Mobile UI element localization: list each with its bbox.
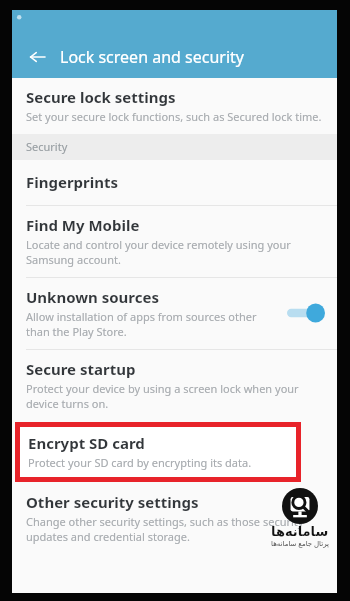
staticText: Lock screen and security xyxy=(60,46,244,68)
staticText: Protect your device by using a screen lo… xyxy=(26,381,325,411)
button[interactable]: Fingerprints xyxy=(12,160,337,205)
staticText: پرتال جامع سامانه‌ها xyxy=(271,539,329,549)
button[interactable]: Unknown sources xyxy=(12,278,337,349)
button[interactable]: Secure startup xyxy=(12,350,337,421)
staticText: Secure lock settings xyxy=(26,87,176,107)
staticText: Protect your SD card by encrypting its d… xyxy=(28,455,252,470)
button[interactable]: Back xyxy=(24,44,50,70)
staticText: Set your secure lock functions, such as … xyxy=(26,109,322,124)
staticText: Encrypt SD card xyxy=(28,433,145,453)
staticText: Security xyxy=(26,139,68,154)
button[interactable]: Other security settings xyxy=(12,486,337,554)
staticText: Change other security settings, such as … xyxy=(26,514,325,544)
button[interactable]: Find My Mobile xyxy=(12,206,337,277)
staticText: Fingerprints xyxy=(26,172,119,192)
staticText: سامانه‌ها xyxy=(271,524,329,539)
staticText: Allow installation of apps from sources … xyxy=(26,309,279,339)
staticText: Unknown sources xyxy=(26,287,159,307)
button[interactable]: Unknown sources toggle xyxy=(287,303,325,323)
staticText: Locate and control your device remotely … xyxy=(26,237,325,267)
button[interactable]: Secure lock settings xyxy=(12,78,337,134)
button[interactable]: Encrypt SD card xyxy=(17,424,299,480)
staticText: Find My Mobile xyxy=(26,215,140,235)
staticText: Other security settings xyxy=(26,492,199,512)
staticText: Secure startup xyxy=(26,359,136,379)
